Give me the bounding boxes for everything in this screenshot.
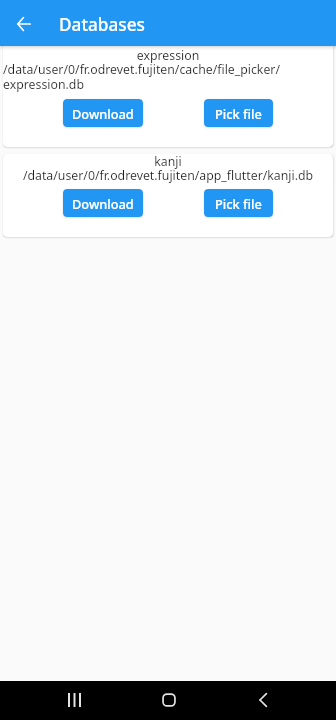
staticText: Download bbox=[72, 195, 134, 212]
staticText: kanji bbox=[3, 154, 333, 169]
button[interactable]: Download bbox=[63, 189, 143, 217]
staticText: Pick file bbox=[215, 105, 262, 122]
staticText: Databases bbox=[59, 13, 145, 36]
button[interactable]: Home bbox=[149, 681, 188, 720]
button[interactable]: Pick file bbox=[204, 189, 273, 217]
button[interactable]: Download bbox=[63, 99, 143, 127]
button[interactable]: Pick file bbox=[204, 99, 273, 127]
button[interactable]: Back bbox=[7, 7, 40, 40]
staticText: Download bbox=[72, 105, 134, 122]
staticText: /data/user/0/fr.odrevet.fujiten/app_flut… bbox=[3, 168, 333, 183]
button[interactable]: Back bbox=[243, 681, 282, 720]
staticText: /data/user/0/fr.odrevet.fujiten/cache/fi… bbox=[3, 62, 333, 92]
staticText: expression bbox=[3, 48, 333, 63]
button[interactable]: Recent apps bbox=[55, 681, 94, 720]
staticText: Pick file bbox=[215, 195, 262, 212]
